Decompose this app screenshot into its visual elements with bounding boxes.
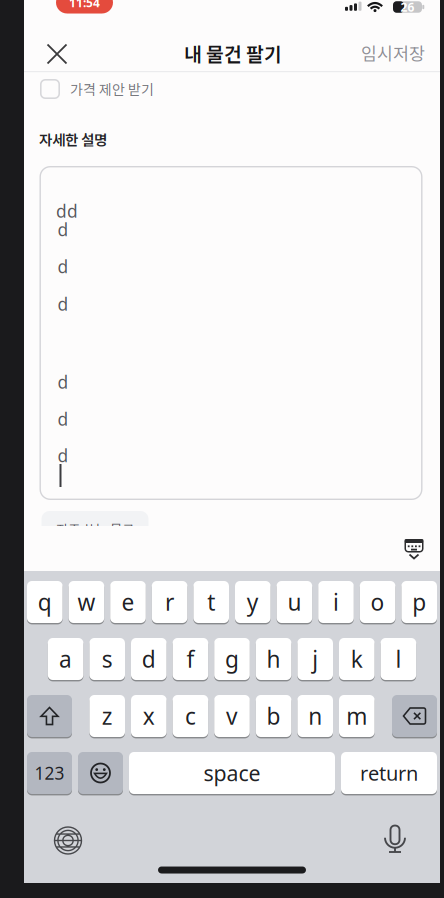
button[interactable]: f [173,637,208,681]
staticText: o [371,587,385,617]
button[interactable]: 임시저장 [355,34,431,72]
button[interactable]: o [360,580,395,624]
button[interactable]: h [256,637,291,681]
button[interactable]: Emoji [78,751,123,795]
staticText: 11:54 [69,0,100,10]
staticText: 임시저장 [361,40,425,66]
button[interactable]: space [129,751,335,795]
staticText: i [333,587,339,617]
staticText: l [395,644,401,674]
button[interactable]: y [235,580,271,624]
button[interactable]: 닫기 [37,34,76,73]
staticText: p [412,587,426,617]
staticText: b [267,701,281,731]
button[interactable]: t [193,580,229,624]
button[interactable]: i [318,580,354,624]
staticText: 가격 제안 받기 [70,79,154,99]
staticText: 자주 쓰는 문구 [56,519,134,539]
button[interactable]: 123 [27,751,72,795]
staticText: u [287,587,301,617]
button[interactable]: v [214,694,250,738]
button[interactable]: k [339,637,375,681]
staticText: z [102,701,113,731]
staticText: n [308,701,322,731]
button[interactable]: s [89,637,125,681]
button[interactable]: 자주 쓰는 문구 [41,511,148,547]
staticText: j [312,644,318,674]
staticText: d [142,644,156,674]
button[interactable]: w [69,580,104,624]
staticText: space [203,759,260,787]
button[interactable]: x [131,694,167,738]
staticText: d [57,292,68,315]
staticText: t [207,587,215,617]
button[interactable]: l [381,637,416,681]
staticText: s [102,644,113,674]
staticText: g [225,644,239,674]
staticText: e [121,587,134,617]
button[interactable]: Dictation [377,817,413,861]
staticText: m [346,701,367,731]
staticText: h [267,644,281,674]
staticText: r [165,587,174,617]
button[interactable]: Delete [392,694,437,738]
button[interactable]: Next keyboard [46,819,89,862]
staticText: y [247,587,259,617]
staticText: 내 물건 팔기 [184,39,282,67]
staticText: 자세한 설명 [39,128,107,150]
staticText: k [351,644,363,674]
button[interactable]: r [152,580,187,624]
staticText: d [57,255,68,278]
staticText: a [59,644,72,674]
button[interactable]: Shift [27,694,72,738]
staticText: w [77,587,95,617]
button[interactable]: 키보드 내리기 [404,539,423,559]
button[interactable]: c [173,694,208,738]
button[interactable]: 가격 제안 받기 [40,79,154,99]
staticText: 123 [34,761,64,784]
button[interactable]: m [339,694,375,738]
staticText: d [57,407,68,430]
staticText: x [143,701,155,731]
button[interactable]: g [214,637,250,681]
staticText: dd [56,199,78,222]
staticText: f [186,644,194,674]
staticText: d [57,370,68,393]
staticText: v [226,701,238,731]
button[interactable]: z [89,694,125,738]
button[interactable]: j [297,637,333,681]
staticText: 26 [400,0,414,15]
button[interactable]: b [256,694,291,738]
staticText: d [57,444,68,467]
staticText: c [185,701,196,731]
button[interactable]: e [110,580,146,624]
button[interactable]: a [48,637,83,681]
button[interactable]: u [277,580,312,624]
staticText: q [38,587,52,617]
button[interactable]: p [401,580,437,624]
button[interactable]: n [297,694,333,738]
button[interactable]: return [341,751,437,795]
staticText: return [360,760,418,786]
staticText: d [57,218,68,241]
button[interactable]: q [27,580,63,624]
button[interactable]: d [131,637,167,681]
